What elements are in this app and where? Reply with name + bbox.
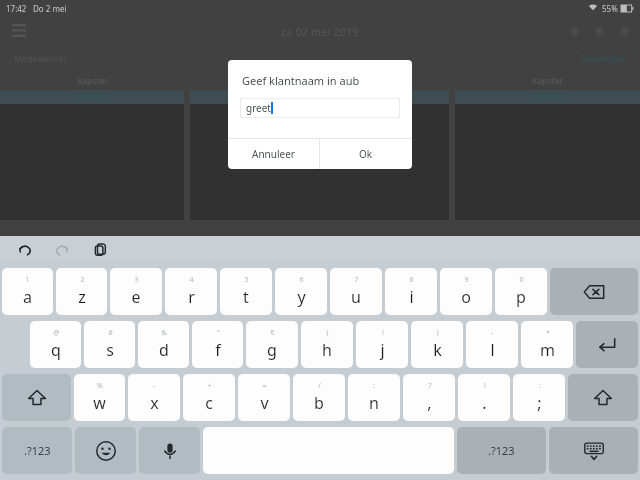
button[interactable]: Emoji: [75, 427, 136, 474]
button[interactable]: !: [356, 321, 408, 368]
staticText: w: [93, 392, 106, 414]
staticText: 7: [354, 275, 359, 285]
button[interactable]: 0: [495, 268, 547, 315]
button[interactable]: .?123: [457, 427, 546, 474]
button[interactable]: .?123: [2, 427, 72, 474]
button[interactable]: +: [183, 374, 235, 421]
staticText: g: [267, 339, 277, 361]
button[interactable]: Hide keyboard: [549, 427, 638, 474]
button[interactable]: %: [74, 374, 125, 421]
staticText: :: [539, 381, 541, 391]
staticText: h: [322, 339, 332, 361]
button[interactable]: 6: [275, 268, 327, 315]
staticText: -: [153, 381, 156, 391]
staticText: Do 2 mei: [33, 3, 67, 14]
button[interactable]: greet: [240, 98, 400, 118]
staticText: n: [369, 392, 379, 414]
button[interactable]: (: [301, 321, 353, 368]
staticText: 5: [244, 275, 249, 285]
button[interactable]: Voice input: [139, 427, 200, 474]
staticText: €: [270, 328, 275, 338]
staticText: Geef klantnaam in aub: [242, 73, 360, 88]
staticText: i: [409, 286, 414, 308]
button[interactable]: Annuleer: [228, 139, 319, 169]
button[interactable]: €: [246, 321, 298, 368]
staticText: m: [540, 339, 555, 361]
staticText: 6: [299, 275, 304, 285]
staticText: v: [260, 392, 269, 414]
staticText: Medewerker: [14, 52, 68, 64]
staticText: .?123: [24, 443, 51, 458]
button[interactable]: Shift: [2, 374, 71, 421]
staticText: 3: [134, 275, 139, 285]
staticText: k: [433, 339, 442, 361]
staticText: u: [351, 286, 361, 308]
button[interactable]: -: [128, 374, 180, 421]
button[interactable]: Clipboard: [90, 239, 110, 259]
button[interactable]: Enter: [576, 321, 638, 368]
staticText: !: [484, 381, 486, 391]
button[interactable]: Redo: [52, 239, 72, 259]
button[interactable]: 9: [440, 268, 492, 315]
staticText: za 02 mei: [304, 92, 336, 102]
button[interactable]: *: [521, 321, 573, 368]
staticText: Annuleer: [252, 147, 295, 161]
staticText: e: [131, 286, 141, 308]
staticText: Instellingen: [581, 53, 626, 64]
button[interactable]: 5: [220, 268, 272, 315]
staticText: r: [188, 286, 195, 308]
staticText: d: [159, 339, 169, 361]
staticText: !: [382, 328, 384, 338]
staticText: b: [314, 392, 324, 414]
button[interactable]: :: [348, 374, 400, 421]
staticText: ": [217, 328, 220, 338]
staticText: .: [482, 392, 487, 414]
button[interactable]: Shift: [568, 374, 638, 421]
staticText: p: [516, 286, 526, 308]
button[interactable]: &: [138, 321, 189, 368]
button[interactable]: 1: [2, 268, 53, 315]
staticText: f: [215, 339, 221, 361]
button[interactable]: ?: [403, 374, 455, 421]
button[interactable]: 4: [165, 268, 217, 315]
staticText: 0: [519, 275, 524, 285]
staticText: 4: [189, 275, 194, 285]
staticText: t: [243, 286, 249, 308]
button[interactable]: :: [513, 374, 565, 421]
button[interactable]: ": [192, 321, 243, 368]
button[interactable]: -: [466, 321, 518, 368]
button[interactable]: Undo: [14, 239, 34, 259]
staticText: Dagplanning: [294, 75, 345, 86]
staticText: %: [97, 381, 103, 391]
button[interactable]: 3: [110, 268, 162, 315]
staticText: Ok: [359, 147, 373, 161]
staticText: Kapster: [532, 75, 563, 86]
staticText: *: [546, 328, 550, 338]
button[interactable]: @: [30, 321, 81, 368]
staticText: za 02 mei 2019: [281, 24, 359, 39]
button[interactable]: Ok: [320, 139, 412, 169]
staticText: :: [373, 381, 375, 391]
button[interactable]: #: [84, 321, 135, 368]
staticText: za 02 mei: [532, 92, 564, 102]
staticText: z: [78, 286, 86, 308]
button[interactable]: 7: [330, 268, 382, 315]
staticText: Kapster: [77, 75, 108, 86]
staticText: s: [106, 339, 114, 361]
button[interactable]: 8: [385, 268, 437, 315]
staticText: a: [23, 286, 32, 308]
staticText: -: [491, 328, 494, 338]
button[interactable]: 2: [56, 268, 107, 315]
button[interactable]: /: [293, 374, 345, 421]
button[interactable]: !: [458, 374, 510, 421]
button[interactable]: ): [411, 321, 463, 368]
staticText: ;: [537, 392, 542, 414]
staticText: 55%: [602, 3, 618, 14]
button[interactable]: =: [238, 374, 290, 421]
button[interactable]: Backspace: [550, 268, 638, 315]
staticText: ?: [428, 381, 432, 391]
staticText: 17:42: [6, 3, 27, 14]
staticText: &: [161, 328, 167, 338]
staticText: o: [461, 286, 471, 308]
